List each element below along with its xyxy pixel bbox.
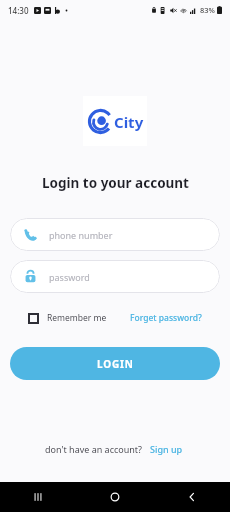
button[interactable]: Sign up (148, 441, 185, 457)
staticText: 83% (200, 5, 215, 15)
button[interactable]: Home (76, 482, 153, 512)
staticText: Forget password? (130, 312, 202, 324)
staticText: password (49, 271, 90, 283)
button[interactable]: Back (153, 482, 230, 512)
staticText: Login to your account (42, 174, 189, 192)
button[interactable]: password (10, 260, 220, 293)
staticText: don't have an account? (45, 443, 143, 455)
button[interactable]: Remember me (28, 308, 107, 328)
staticText: Sign up (150, 443, 183, 455)
staticText: 14:30 (8, 5, 29, 16)
button[interactable]: phone number (10, 218, 220, 251)
staticText: City (114, 112, 144, 132)
button[interactable]: Recent apps (0, 482, 76, 512)
button[interactable]: Forget password? (130, 308, 202, 328)
button[interactable]: LOGIN (10, 347, 220, 380)
staticText: Remember me (47, 312, 107, 324)
staticText: phone number (49, 229, 113, 241)
staticText: LOGIN (97, 357, 134, 371)
